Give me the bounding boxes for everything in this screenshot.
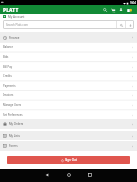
button[interactable]: Forms bbox=[0, 141, 137, 151]
button[interactable]: Manage Users bbox=[0, 100, 137, 110]
button[interactable]: Payments bbox=[0, 81, 137, 91]
staticText: Payments bbox=[3, 84, 16, 88]
staticText: Search Platt.com bbox=[6, 23, 28, 27]
button[interactable]: Recents bbox=[84, 169, 96, 181]
button[interactable]: Bids bbox=[0, 52, 137, 62]
button[interactable]: Search Platt.com bbox=[3, 20, 134, 29]
button[interactable]: Finance bbox=[0, 32, 137, 43]
staticText: Credits bbox=[3, 74, 12, 78]
button[interactable]: My Account bbox=[0, 14, 137, 19]
button[interactable]: Credits bbox=[0, 71, 137, 81]
staticText: 9:04 bbox=[130, 1, 136, 5]
staticText: Finance bbox=[9, 36, 20, 40]
button[interactable]: Search bbox=[117, 21, 125, 29]
button[interactable]: My Orders bbox=[0, 119, 137, 129]
staticText: PLATT bbox=[3, 7, 19, 13]
button[interactable]: Sign Out bbox=[7, 156, 130, 164]
button[interactable]: Search bbox=[101, 6, 109, 14]
staticText: Manage Users bbox=[3, 103, 22, 107]
staticText: Sign Out bbox=[65, 158, 77, 162]
button[interactable]: Set Preferences bbox=[0, 110, 137, 120]
button[interactable]: Account bbox=[117, 6, 125, 14]
button[interactable]: Voice search bbox=[126, 21, 134, 29]
staticText: Bids bbox=[3, 55, 9, 59]
button[interactable]: Invoices bbox=[0, 90, 137, 100]
staticText: Balance bbox=[3, 45, 13, 49]
staticText: Bill Pay bbox=[3, 65, 13, 69]
staticText: Set Preferences bbox=[3, 113, 23, 117]
button[interactable]: Back bbox=[41, 169, 53, 181]
button[interactable]: Cart bbox=[109, 6, 117, 14]
staticText: Forms bbox=[9, 144, 18, 148]
button[interactable]: Home bbox=[63, 169, 75, 181]
button[interactable]: Bill Pay bbox=[0, 62, 137, 72]
staticText: Invoices bbox=[3, 93, 14, 97]
staticText: My Orders bbox=[9, 122, 24, 126]
button[interactable]: Balance bbox=[0, 42, 137, 52]
staticText: My Lists bbox=[9, 134, 20, 138]
button[interactable]: My Lists bbox=[0, 131, 137, 141]
staticText: My Account bbox=[8, 15, 25, 19]
button[interactable]: Store bbox=[125, 6, 133, 14]
